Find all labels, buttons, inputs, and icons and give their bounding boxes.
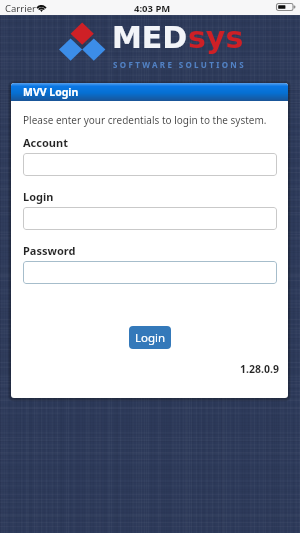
staticText: Login [135,330,166,346]
button[interactable] [23,207,277,230]
staticText: MED [112,20,188,55]
staticText: Login [23,189,54,204]
staticText: 4:03 PM [134,2,171,15]
button[interactable]: Login [129,326,171,349]
staticText: Password [23,243,76,258]
staticText: SOFTWARE SOLUTIONS [113,59,246,70]
button[interactable] [23,153,277,176]
staticText: Account [23,135,68,150]
staticText: sys [188,20,244,55]
staticText: Carrier [5,2,36,15]
button[interactable] [23,261,277,284]
staticText: MVV Login [23,85,79,99]
staticText: 1.28.0.9 [240,362,279,376]
button[interactable]: MVV Login [11,83,288,101]
staticText: Please enter your credentials to login t… [23,113,267,127]
